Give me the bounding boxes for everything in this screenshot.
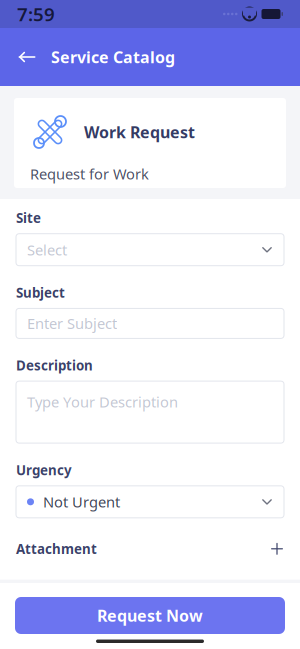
- staticText: Urgency: [16, 461, 72, 479]
- staticText: 7:59: [17, 2, 55, 26]
- button[interactable]: Back: [10, 40, 44, 74]
- button[interactable]: Request Now: [15, 597, 285, 634]
- button[interactable]: Select: [16, 234, 284, 266]
- staticText: Service Catalog: [51, 46, 175, 68]
- staticText: Select: [27, 240, 67, 259]
- staticText: Description: [16, 356, 93, 374]
- staticText: Request Now: [97, 605, 203, 626]
- button[interactable]: Not Urgent: [16, 486, 284, 518]
- staticText: Site: [16, 209, 41, 227]
- staticText: Enter Subject: [27, 314, 117, 333]
- staticText: Request for Work: [30, 164, 149, 183]
- staticText: Work Request: [84, 121, 195, 143]
- staticText: Not Urgent: [43, 492, 120, 512]
- staticText: Subject: [16, 284, 65, 301]
- staticText: Attachment: [16, 540, 97, 558]
- staticText: Type Your Description: [27, 392, 178, 412]
- button[interactable]: Attachment: [16, 532, 284, 566]
